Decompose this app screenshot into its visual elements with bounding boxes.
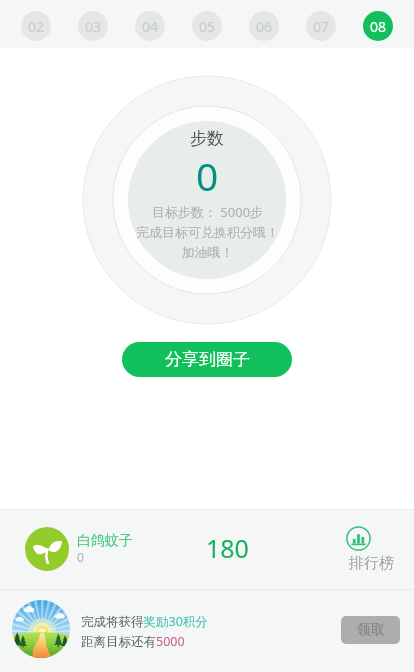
staticText: 分享到圈子 <box>165 349 250 370</box>
staticText: 07 <box>313 17 330 36</box>
staticText: 步数 <box>190 128 224 149</box>
button[interactable]: 08 <box>363 11 393 41</box>
button[interactable]: 02 <box>21 11 51 41</box>
staticText: 06 <box>256 17 273 36</box>
staticText: 08 <box>370 17 387 36</box>
staticText: 排行榜 <box>349 554 394 573</box>
button[interactable]: 07 <box>306 11 336 41</box>
button[interactable]: 05 <box>192 11 222 41</box>
staticText: 0 <box>196 149 219 202</box>
staticText: 02 <box>28 17 45 36</box>
button[interactable]: 06 <box>249 11 279 41</box>
staticText: 白鸽蚊子 <box>77 532 133 550</box>
button[interactable]: 04 <box>135 11 165 41</box>
staticText: 05 <box>199 17 216 36</box>
button[interactable] <box>0 590 414 672</box>
staticText: 完成将获得奖励30积分 <box>81 613 208 630</box>
staticText: 领取 <box>357 621 385 639</box>
staticText: 180 <box>206 531 249 565</box>
button[interactable]: 领取 <box>341 616 400 644</box>
staticText: 0 <box>77 549 84 565</box>
button[interactable]: 03 <box>78 11 108 41</box>
staticText: 04 <box>142 17 159 36</box>
button[interactable]: 分享到圈子 <box>122 342 292 377</box>
button[interactable]: 白鸽蚊子 <box>25 510 180 589</box>
staticText: 目标步数： 5000步 完成目标可兑换积分哦！ 加油哦！ <box>136 203 279 260</box>
button[interactable]: 排行榜 Leaderboard <box>336 510 404 589</box>
staticText: 03 <box>85 17 102 36</box>
staticText: 距离目标还有5000 <box>81 633 185 650</box>
